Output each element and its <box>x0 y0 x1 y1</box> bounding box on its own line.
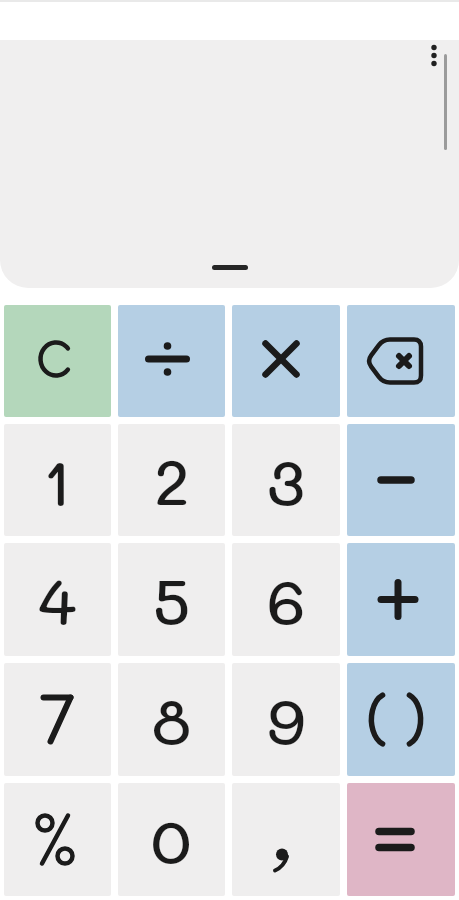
button[interactable]: 6 <box>232 543 340 656</box>
staticText: 4 <box>38 558 77 641</box>
staticText: 1 <box>43 439 72 522</box>
button[interactable]: 2 <box>118 424 225 536</box>
button[interactable]: 4 <box>4 543 111 656</box>
button[interactable]: 9 <box>232 663 340 776</box>
button[interactable]: 3 <box>232 424 340 536</box>
button[interactable] <box>4 783 111 896</box>
button[interactable]: 8 <box>118 663 225 776</box>
button[interactable] <box>4 663 111 776</box>
button[interactable] <box>347 305 455 417</box>
staticText: 8 <box>152 678 192 761</box>
button[interactable] <box>347 424 455 536</box>
button[interactable]: 1 <box>4 424 111 536</box>
staticText: 9 <box>267 678 306 761</box>
staticText: 3 <box>267 439 305 522</box>
button[interactable] <box>4 305 111 417</box>
button[interactable] <box>347 783 455 896</box>
button[interactable] <box>347 663 455 776</box>
button[interactable] <box>232 305 340 417</box>
button[interactable] <box>347 543 455 656</box>
staticText: 5 <box>153 558 191 641</box>
staticText: 0 <box>151 798 192 881</box>
staticText: 6 <box>267 558 306 641</box>
button[interactable] <box>422 40 446 72</box>
button[interactable]: 5 <box>118 543 225 656</box>
staticText: 2 <box>154 439 190 522</box>
button[interactable] <box>232 783 340 896</box>
button[interactable]: 0 <box>118 783 225 896</box>
button[interactable] <box>118 305 225 417</box>
